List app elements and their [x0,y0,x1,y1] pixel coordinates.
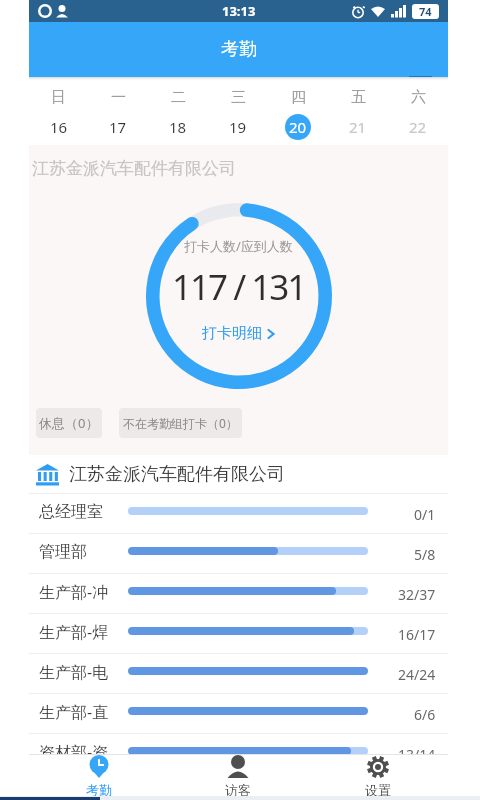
staticText: 6/6 [414,705,436,724]
staticText: 生产部-焊 [39,621,109,643]
staticText: 32/37 [398,585,436,604]
button[interactable]: 不在考勤组打卡（0） [119,408,242,438]
staticText: 17 [109,117,127,137]
staticText: 设置 [365,782,391,798]
staticText: 江苏金派汽车配件有限公司 [32,158,236,179]
staticText: 六 [411,88,426,107]
button[interactable]: 江苏金派汽车配件有限公司 [29,455,448,493]
staticText: 16/17 [398,625,436,644]
staticText: 五 [351,88,366,107]
staticText: 江苏金派汽车配件有限公司 [69,463,285,486]
staticText: 二 [171,88,186,107]
staticText: 一 [111,88,126,107]
staticText: 不在考勤组打卡（0） [123,415,238,431]
staticText: 休息（0） [39,414,99,432]
staticText: 21 [349,117,367,137]
staticText: 生产部-电 [39,661,109,683]
button[interactable]: 总经理室 [29,494,448,534]
button[interactable]: 生产部-冲 [29,574,448,614]
staticText: 管理部 [39,542,87,562]
button[interactable]: 18 [165,114,191,140]
staticText: 访客 [225,782,251,798]
staticText: 四 [291,88,306,107]
staticText: 24/24 [398,665,436,684]
button[interactable]: 20 [285,114,311,140]
staticText: 5/8 [414,545,436,564]
button[interactable]: 资材部-资 [29,734,448,774]
staticText: 19 [229,117,247,137]
button[interactable]: 休息（0） [36,408,102,438]
staticText: 总经理室 [39,502,103,522]
staticText: 13:13 [222,2,256,20]
staticText: 74 [419,4,432,19]
staticText: 生产部-直 [39,701,109,723]
button[interactable]: 生产部-直 [29,694,448,734]
button[interactable]: 打卡明细 [202,324,276,343]
button[interactable]: 访客 [168,755,308,800]
button[interactable]: 生产部-焊 [29,614,448,654]
staticText: 打卡明细 [202,324,262,343]
staticText: 16 [50,117,68,137]
staticText: 资材部-资 [39,741,109,763]
staticText: 20 [289,117,307,137]
button[interactable]: 21 [345,114,371,140]
button[interactable]: 生产部-电 [29,654,448,694]
button[interactable]: 16 [46,114,72,140]
staticText: 18 [169,117,187,137]
staticText: 考勤 [86,782,112,798]
staticText: 13/14 [398,745,436,764]
staticText: 打卡人数/应到人数 [184,237,293,255]
staticText: 0/1 [414,505,436,524]
button[interactable]: 17 [105,114,131,140]
staticText: 117 / 131 [172,263,306,311]
staticText: 考勤 [221,38,257,61]
button[interactable]: 设置 [308,755,448,800]
button[interactable]: 管理部 [29,534,448,574]
button[interactable]: 考勤 [29,755,168,800]
staticText: 22 [409,117,427,137]
staticText: 生产部-冲 [39,581,109,603]
button[interactable]: 22 [405,114,431,140]
staticText: 日 [51,88,66,107]
button[interactable]: 19 [225,114,251,140]
staticText: 三 [231,88,246,107]
